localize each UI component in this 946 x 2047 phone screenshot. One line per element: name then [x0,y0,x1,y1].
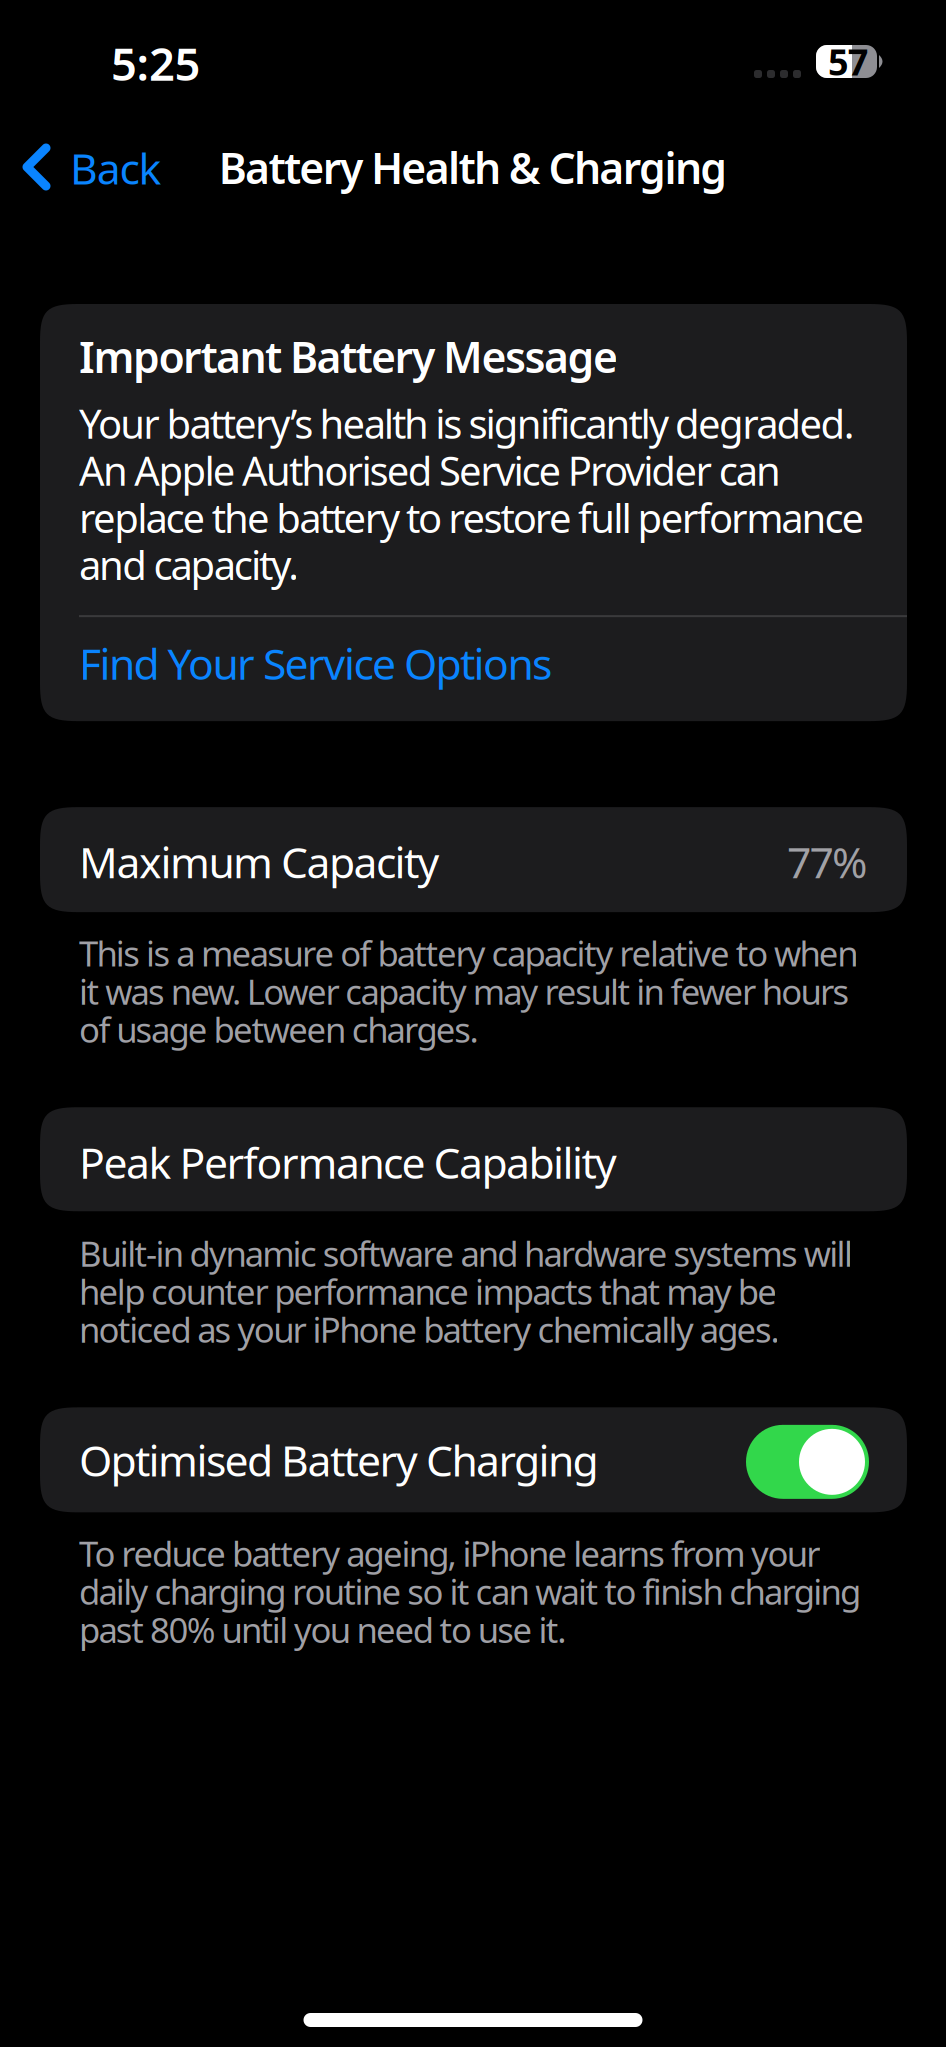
staticText: Built-in dynamic software and hardware s… [79,1230,853,1352]
button[interactable]: Find Your Service Options [40,617,907,721]
button[interactable]: Peak Performance Capability [40,1107,907,1211]
staticText: Peak Performance Capability [79,1134,617,1191]
staticText: 57 [828,38,869,85]
staticText: Back [70,140,161,196]
staticText: 77% [787,833,867,890]
staticText: Optimised Battery Charging [79,1431,598,1488]
staticText: 5:25 [111,33,200,93]
staticText: This is a measure of battery capacity re… [79,930,858,1052]
staticText: Battery Health & Charging [219,139,727,196]
button[interactable]: Back [0,120,210,216]
staticText: Your battery’s health is significantly d… [79,397,865,591]
staticText: Maximum Capacity [79,833,439,890]
staticText: Important Battery Message [79,328,618,385]
staticText: To reduce battery ageing, iPhone learns … [79,1530,861,1652]
button[interactable]: Optimised Battery Charging [746,1421,869,1499]
staticText: Find Your Service Options [79,635,552,691]
